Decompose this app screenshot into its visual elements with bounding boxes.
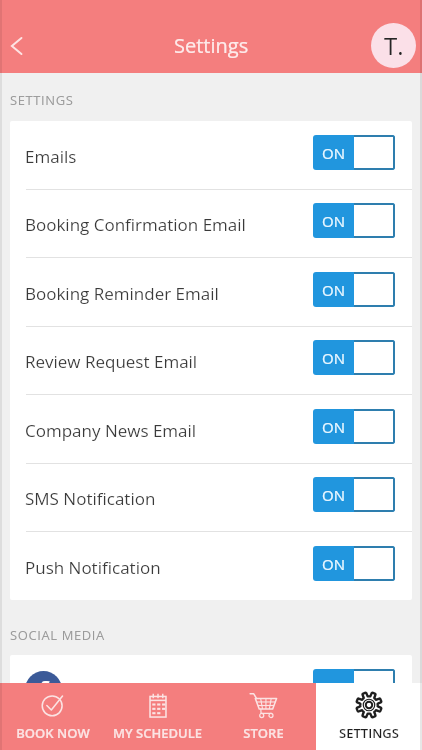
- staticText: ON: [322, 143, 345, 163]
- button[interactable]: Push Notification: [10, 532, 412, 600]
- button[interactable]: Booking Reminder Email: [10, 258, 412, 326]
- button[interactable]: MY SCHEDULE: [105, 683, 210, 750]
- button[interactable]: Toggle on: [313, 477, 395, 512]
- button[interactable]: STORE: [210, 683, 316, 750]
- button[interactable]: f: [10, 655, 412, 723]
- staticText: Booking Reminder Email: [25, 282, 219, 305]
- staticText: SETTINGS: [339, 724, 399, 742]
- staticText: Push Notification: [25, 556, 161, 579]
- button[interactable]: Review Request Email: [10, 327, 412, 394]
- button[interactable]: Back: [0, 18, 32, 73]
- staticText: Emails: [25, 145, 77, 168]
- staticText: SETTINGS: [10, 91, 74, 109]
- button[interactable]: Toggle on: [313, 203, 395, 238]
- staticText: Company News Email: [25, 419, 197, 442]
- staticText: ON: [322, 417, 345, 437]
- staticText: SOCIAL MEDIA: [10, 626, 105, 644]
- staticText: Review Request Email: [25, 350, 198, 373]
- staticText: SMS Notification: [25, 487, 156, 510]
- staticText: BOOK NOW: [16, 724, 90, 742]
- staticText: MY SCHEDULE: [113, 724, 202, 742]
- staticText: ON: [322, 677, 345, 697]
- button[interactable]: Toggle on: [313, 340, 395, 375]
- button[interactable]: Company News Email: [10, 395, 412, 463]
- button[interactable]: SMS Notification: [10, 464, 412, 531]
- staticText: T.: [384, 29, 404, 62]
- button[interactable]: Toggle on: [313, 409, 395, 444]
- button[interactable]: Emails: [10, 121, 412, 189]
- staticText: Booking Confirmation Email: [25, 213, 246, 236]
- button[interactable]: Toggle on: [313, 669, 395, 704]
- button[interactable]: BOOK NOW: [0, 683, 105, 750]
- button[interactable]: Booking Confirmation Email: [10, 190, 412, 257]
- staticText: STORE: [243, 724, 284, 742]
- staticText: ON: [322, 554, 345, 574]
- staticText: ON: [322, 211, 345, 231]
- button[interactable]: Toggle on: [313, 135, 395, 170]
- button[interactable]: Toggle on: [313, 546, 395, 581]
- staticText: Facebook: [79, 678, 155, 701]
- staticText: ON: [322, 348, 345, 368]
- button[interactable]: SETTINGS: [316, 683, 422, 750]
- button[interactable]: Toggle on: [313, 272, 395, 307]
- staticText: ON: [322, 485, 345, 505]
- staticText: Settings: [174, 32, 249, 59]
- button[interactable]: T.: [371, 23, 416, 68]
- staticText: f: [39, 673, 49, 706]
- staticText: ON: [322, 280, 345, 300]
